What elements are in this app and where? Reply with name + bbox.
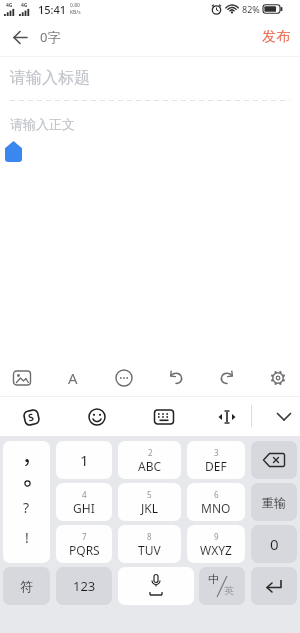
- button[interactable]: 发布: [262, 28, 290, 46]
- button[interactable]: [152, 407, 176, 427]
- button[interactable]: 7: [56, 525, 112, 563]
- staticText: 4: [82, 489, 87, 500]
- staticText: 中: [208, 572, 219, 586]
- staticText: DEF: [205, 458, 227, 474]
- staticText: 0.80: [70, 2, 80, 9]
- staticText: 请输入正文: [10, 116, 75, 132]
- staticText: S: [27, 409, 35, 424]
- button[interactable]: [118, 567, 194, 605]
- staticText: JKL: [141, 500, 158, 516]
- button[interactable]: [251, 441, 297, 479]
- button[interactable]: 3: [187, 441, 245, 479]
- button[interactable]: 重输: [251, 483, 297, 521]
- button[interactable]: 0: [251, 525, 297, 563]
- button[interactable]: 请输入标题: [10, 68, 300, 88]
- staticText: 123: [73, 577, 96, 595]
- button[interactable]: 1: [56, 441, 112, 479]
- button[interactable]: 9: [187, 525, 245, 563]
- staticText: TUV: [138, 542, 161, 558]
- button[interactable]: [266, 366, 290, 390]
- staticText: GHI: [73, 500, 95, 516]
- button[interactable]: 6: [187, 483, 245, 521]
- button[interactable]: 符: [3, 567, 50, 605]
- button[interactable]: 2: [118, 441, 181, 479]
- staticText: 6: [214, 489, 219, 500]
- button[interactable]: [86, 407, 108, 427]
- staticText: KB/s: [70, 9, 81, 16]
- button[interactable]: [251, 567, 297, 605]
- staticText: 1: [80, 450, 89, 470]
- button[interactable]: 123: [56, 567, 112, 605]
- button[interactable]: [164, 366, 188, 390]
- button[interactable]: [10, 366, 34, 390]
- button[interactable]: 请输入正文: [10, 116, 300, 132]
- staticText: 符: [20, 578, 33, 594]
- staticText: 0: [270, 534, 279, 554]
- staticText: 重输: [262, 495, 286, 510]
- button[interactable]: [215, 366, 239, 390]
- staticText: 15:41: [38, 2, 67, 17]
- button[interactable]: [215, 407, 239, 427]
- button[interactable]: S: [20, 407, 42, 427]
- button[interactable]: 中: [199, 567, 245, 605]
- staticText: 4G: [6, 2, 13, 9]
- button[interactable]: 4: [56, 483, 112, 521]
- staticText: 3: [214, 447, 219, 458]
- staticText: ABC: [138, 458, 162, 474]
- staticText: 2: [148, 447, 153, 458]
- staticText: A: [68, 368, 78, 388]
- staticText: !: [25, 528, 29, 547]
- staticText: 发布: [262, 28, 290, 46]
- button[interactable]: [272, 407, 296, 427]
- staticText: 82%: [242, 3, 260, 15]
- staticText: 9: [214, 531, 219, 542]
- staticText: PQRS: [69, 542, 100, 558]
- button[interactable]: 8: [118, 525, 181, 563]
- staticText: 英: [224, 584, 234, 597]
- button[interactable]: A: [61, 366, 85, 390]
- staticText: 0字: [40, 28, 61, 46]
- staticText: 5: [147, 489, 152, 500]
- staticText: 请输入标题: [10, 68, 90, 88]
- staticText: MNO: [201, 500, 231, 516]
- button[interactable]: ?: [3, 441, 50, 563]
- staticText: ?: [23, 498, 30, 517]
- button[interactable]: [112, 366, 136, 390]
- staticText: 4G: [21, 2, 28, 9]
- staticText: 7: [82, 531, 87, 542]
- button[interactable]: 5: [118, 483, 181, 521]
- staticText: WXYZ: [200, 542, 232, 558]
- staticText: 8: [147, 531, 152, 542]
- button[interactable]: [0, 18, 40, 56]
